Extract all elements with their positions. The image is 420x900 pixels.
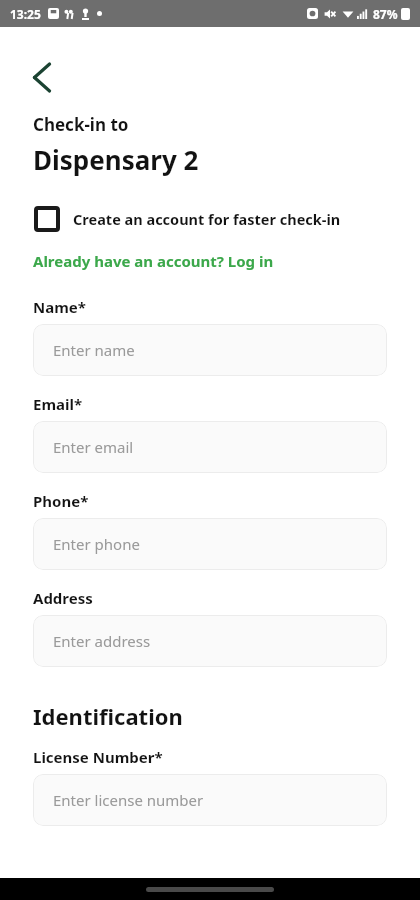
staticText: License Number* [33, 747, 163, 767]
staticText: Create an account for faster check-in [73, 209, 341, 229]
staticText: Enter email [53, 437, 134, 457]
button[interactable]: Enter email [33, 421, 387, 473]
staticText: Already have an account? Log in [33, 251, 274, 271]
staticText: Enter phone [53, 534, 140, 554]
staticText: Email* [33, 394, 83, 414]
staticText: Name* [33, 297, 86, 317]
button[interactable]: Enter address [33, 615, 387, 667]
button[interactable]: Back [33, 60, 67, 94]
button[interactable]: Enter phone [33, 518, 387, 570]
staticText: Phone* [33, 491, 89, 511]
staticText: 87% [373, 6, 398, 22]
staticText: Identification [33, 701, 183, 731]
staticText: Dispensary 2 [33, 142, 199, 177]
button[interactable]: Enter license number [33, 774, 387, 826]
staticText: 13:25 [10, 6, 41, 22]
staticText: Check-in to [33, 113, 129, 136]
staticText: Enter license number [53, 790, 204, 810]
staticText: Enter address [53, 631, 151, 651]
button[interactable]: Enter name [33, 324, 387, 376]
staticText: Address [33, 588, 93, 608]
staticText: Enter name [53, 340, 135, 360]
button[interactable]: Create an account for faster check-in [33, 208, 387, 230]
button[interactable]: Already have an account? Log in [33, 251, 274, 271]
